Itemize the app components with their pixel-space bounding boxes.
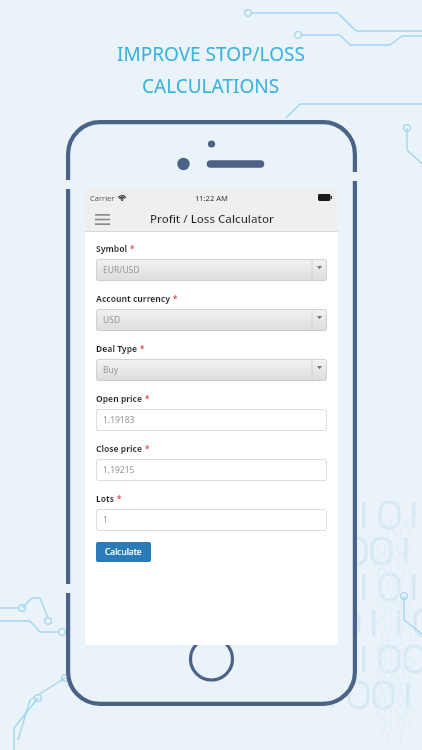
staticText: *: [130, 243, 135, 254]
staticText: Open price: [96, 393, 143, 405]
button[interactable]: 1.19215: [96, 459, 327, 481]
staticText: Close price: [96, 443, 143, 455]
staticText: 1.19183: [103, 414, 135, 426]
button[interactable]: EUR/USD: [96, 259, 327, 281]
staticText: Profit / Loss Calculator: [150, 211, 274, 227]
staticText: Buy: [103, 364, 119, 376]
staticText: Lots: [96, 493, 115, 505]
button[interactable]: Buy: [96, 359, 327, 381]
button[interactable]: Open navigation menu: [85, 206, 119, 232]
button[interactable]: Calculate: [96, 542, 151, 562]
staticText: Symbol: [96, 243, 128, 255]
staticText: EUR/USD: [103, 264, 140, 276]
staticText: *: [140, 343, 145, 354]
staticText: Calculate: [105, 546, 142, 558]
staticText: 11:22 AM: [195, 193, 228, 203]
button[interactable]: 1: [96, 509, 327, 531]
staticText: Carrier: [90, 193, 115, 203]
staticText: *: [117, 493, 122, 504]
staticText: *: [145, 443, 150, 454]
staticText: *: [173, 293, 178, 304]
button[interactable]: 1.19183: [96, 409, 327, 431]
staticText: CALCULATIONS: [142, 73, 280, 99]
staticText: Account currency: [96, 293, 171, 305]
staticText: 1: [103, 514, 108, 526]
staticText: *: [145, 393, 150, 404]
button[interactable]: USD: [96, 309, 327, 331]
staticText: IMPROVE STOP/LOSS: [117, 41, 305, 67]
staticText: USD: [103, 314, 121, 326]
staticText: 1.19215: [103, 464, 135, 476]
staticText: Deal Type: [96, 343, 138, 355]
